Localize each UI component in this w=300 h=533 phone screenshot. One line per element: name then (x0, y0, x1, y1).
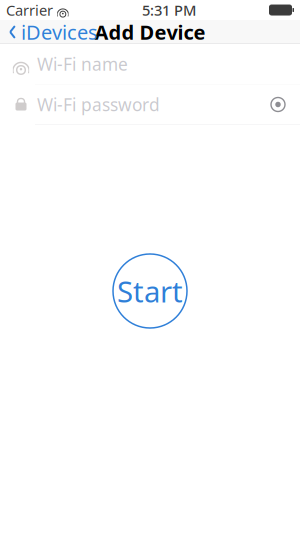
staticText: 5:31 PM (142, 0, 196, 20)
button[interactable]: Wi-Fi password (0, 84, 300, 124)
staticText: Wi-Fi password (37, 93, 160, 116)
staticText: Start (117, 271, 183, 310)
button[interactable]: iDevices (0, 15, 104, 49)
button[interactable]: Wi-Fi name (0, 44, 300, 84)
staticText: Carrier (6, 0, 53, 20)
button[interactable]: Start (113, 254, 187, 328)
staticText: iDevices (21, 19, 98, 45)
staticText: Wi-Fi name (37, 52, 128, 75)
staticText: Add Device (94, 19, 205, 45)
